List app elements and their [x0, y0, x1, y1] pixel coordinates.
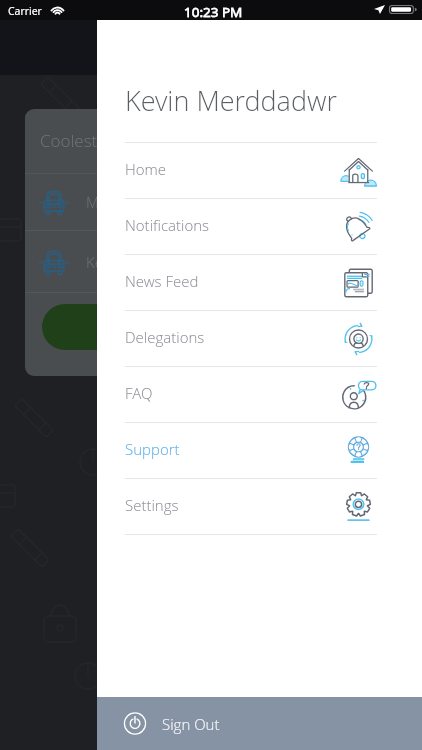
button[interactable]: Home — [97, 143, 422, 198]
staticText: Delegations — [125, 327, 205, 347]
staticText: Coolest Cars — [40, 129, 136, 152]
button[interactable]: Delegations — [97, 311, 422, 366]
button[interactable]: Settings — [97, 479, 422, 534]
staticText: 10:23 PM — [184, 3, 243, 21]
button[interactable]: Notifications — [97, 199, 422, 254]
button[interactable]: Support — [97, 423, 422, 478]
staticText: Sign Out — [162, 714, 220, 734]
staticText: Notifications — [125, 215, 210, 235]
staticText: Home — [125, 159, 167, 179]
button[interactable]: News Feed — [97, 255, 422, 310]
staticText: Kevin Merddadwr — [125, 82, 338, 119]
button[interactable]: FAQ — [97, 367, 422, 422]
staticText: My car — [86, 192, 131, 212]
staticText: Support — [125, 439, 180, 459]
staticText: News Feed — [125, 271, 199, 291]
staticText: Carrier — [8, 4, 42, 18]
staticText: FAQ — [125, 383, 153, 403]
staticText: Settings — [125, 495, 179, 515]
staticText: Kevin's car — [86, 252, 156, 272]
button[interactable]: Sign Out — [97, 697, 422, 750]
